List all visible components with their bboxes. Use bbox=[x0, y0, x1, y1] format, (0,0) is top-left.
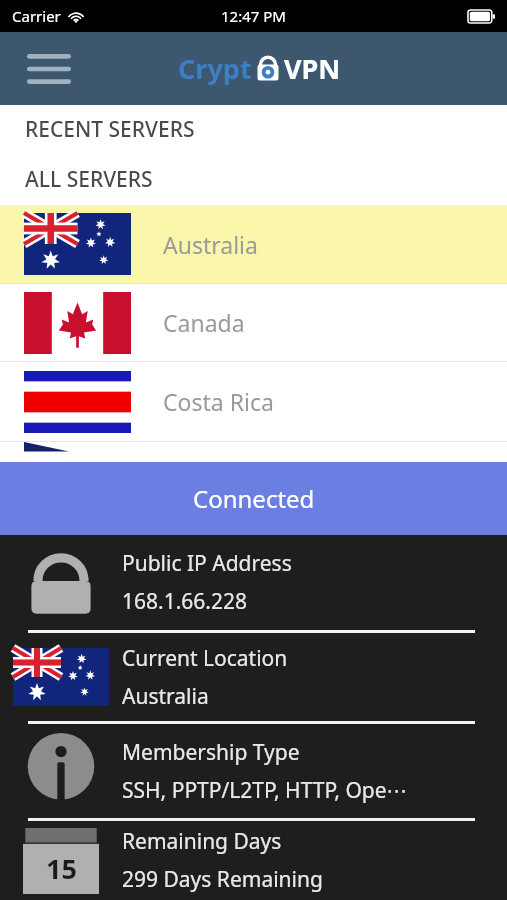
button[interactable]: Costa Rica bbox=[0, 362, 507, 441]
staticText: Australia bbox=[122, 682, 209, 711]
button[interactable]: 15 bbox=[0, 821, 507, 900]
button[interactable]: Membership Type bbox=[0, 724, 507, 818]
staticText: 12:47 PM bbox=[221, 6, 286, 26]
staticText: RECENT SERVERS bbox=[25, 115, 195, 144]
staticText: Carrier bbox=[12, 6, 61, 26]
button[interactable]: Public IP Address bbox=[0, 535, 507, 630]
staticText: 168.1.66.228 bbox=[122, 587, 247, 616]
staticText: Public IP Address bbox=[122, 549, 292, 578]
staticText: Connected bbox=[193, 482, 315, 515]
staticText: Australia bbox=[163, 229, 258, 260]
staticText: Canada bbox=[163, 307, 245, 338]
staticText: Current Location bbox=[122, 644, 288, 673]
staticText: 15 bbox=[46, 850, 77, 887]
staticText: Remaining Days bbox=[122, 827, 282, 856]
staticText: Costa Rica bbox=[163, 386, 274, 417]
staticText: ALL SERVERS bbox=[25, 165, 153, 194]
button[interactable]: Menu bbox=[22, 47, 76, 91]
staticText: 299 Days Remaining bbox=[122, 865, 323, 894]
button[interactable]: Connected bbox=[0, 462, 507, 535]
staticText: Crypt bbox=[178, 50, 252, 87]
button[interactable]: Australia bbox=[0, 205, 507, 283]
button[interactable]: Canada bbox=[0, 284, 507, 361]
staticText: VPN bbox=[284, 50, 341, 87]
staticText: SSH, PPTP/L2TP, HTTP, Ope⋯ bbox=[122, 776, 408, 805]
staticText: Membership Type bbox=[122, 738, 300, 767]
button[interactable]: Current Location bbox=[0, 633, 507, 721]
